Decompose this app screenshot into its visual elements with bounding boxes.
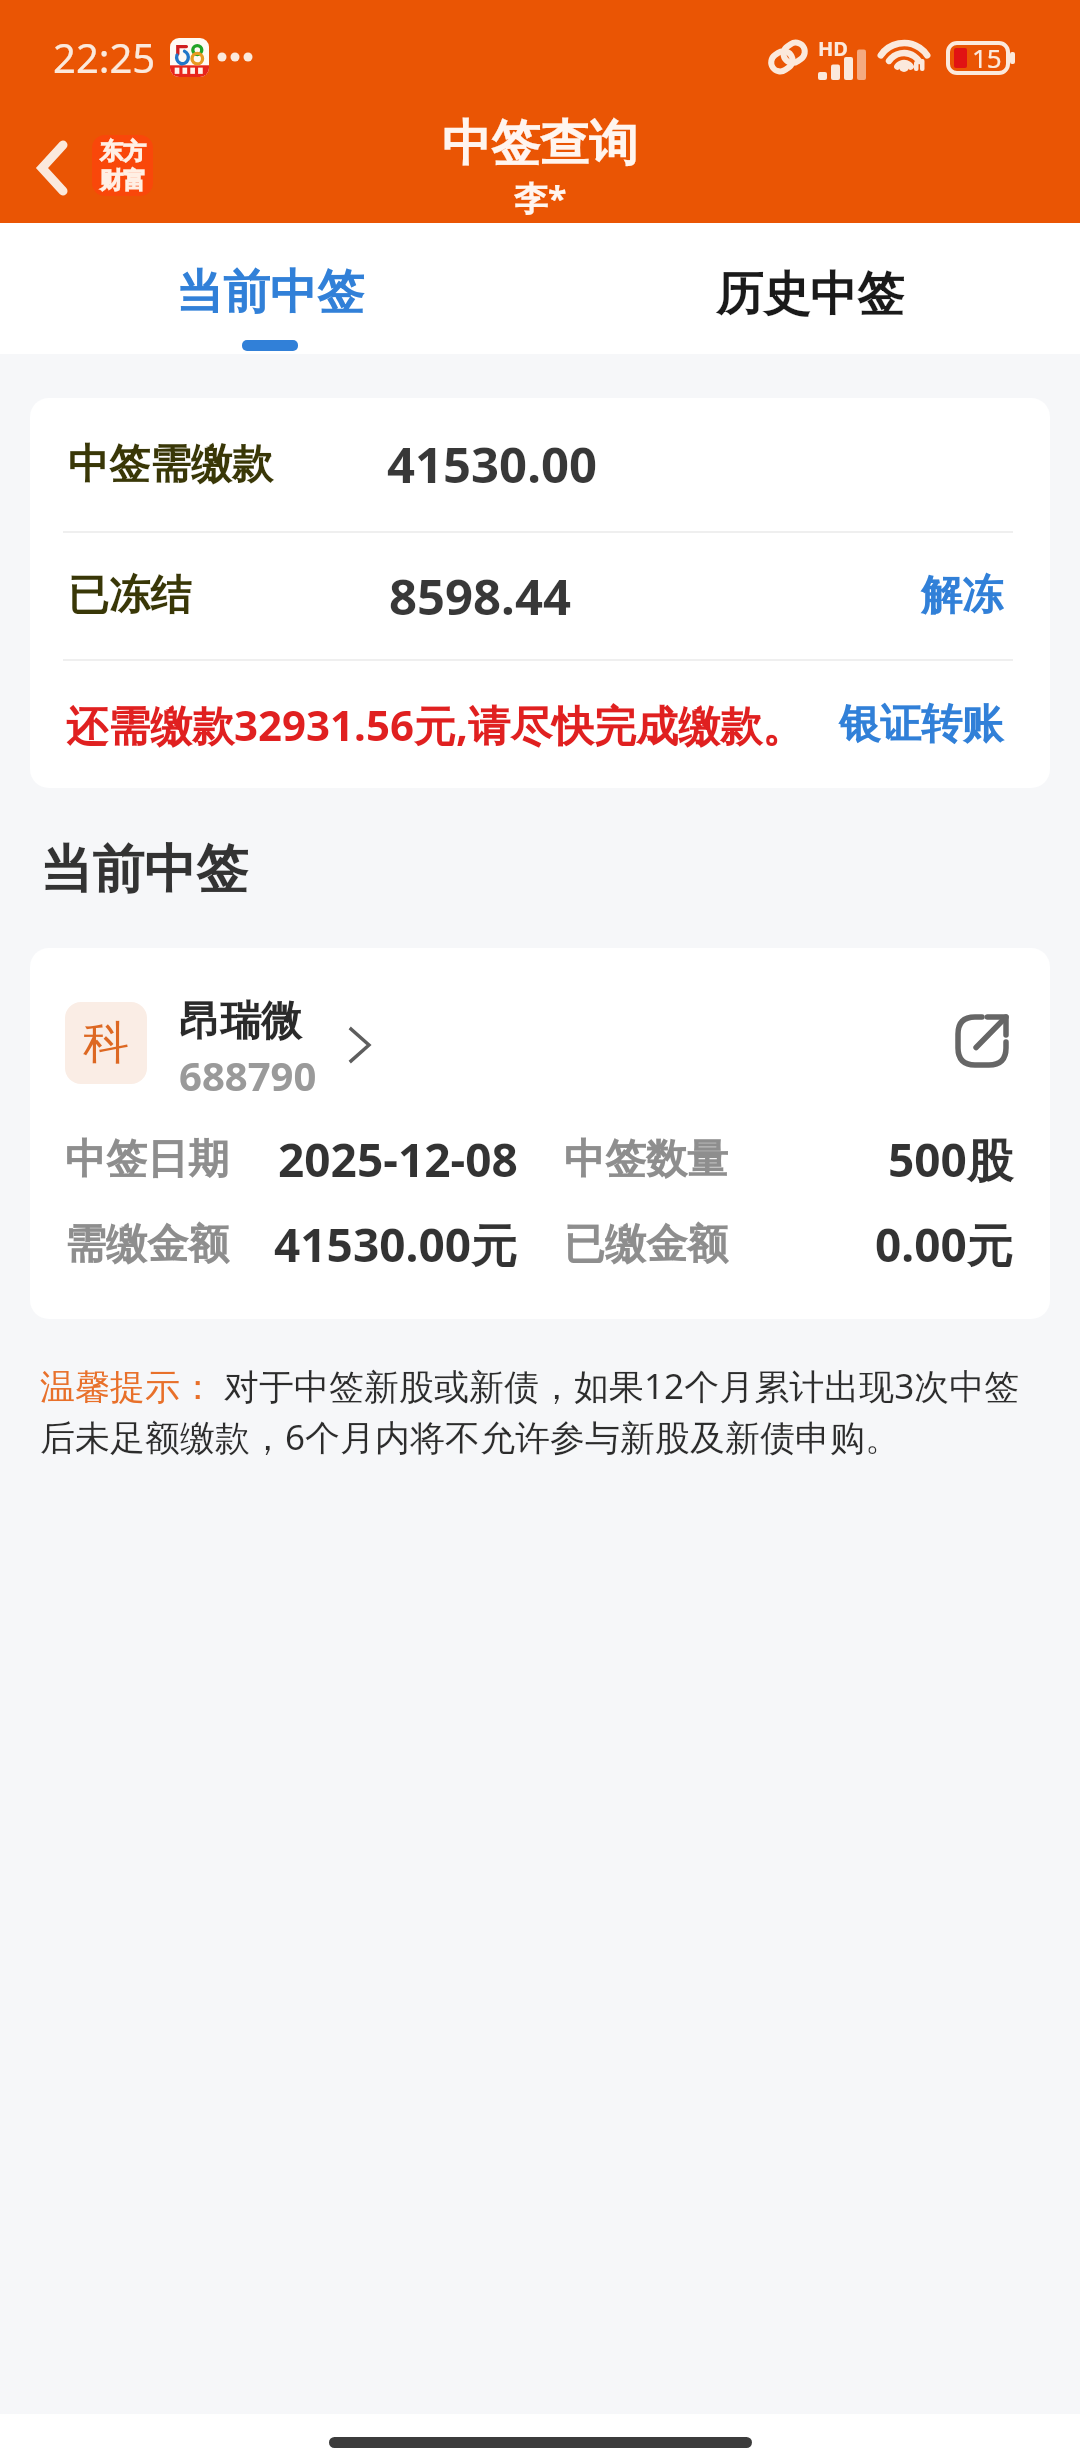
button[interactable]: 银证转账	[839, 679, 1003, 771]
staticText: 财富	[100, 166, 146, 195]
staticText: 22:25	[53, 30, 156, 84]
staticText: 中签查询	[442, 113, 638, 175]
staticText: 15	[972, 40, 1002, 75]
staticText: 历史中签	[716, 265, 904, 324]
staticText: 已冻结	[68, 570, 191, 622]
staticText: 500股	[888, 1128, 1013, 1191]
staticText: 2025-12-08	[278, 1128, 518, 1191]
staticText: 已缴金额	[564, 1219, 728, 1271]
button[interactable]: 解冻	[921, 550, 1003, 642]
staticText: 中签数量	[564, 1134, 728, 1186]
staticText: 解冻	[921, 570, 1003, 622]
staticText: 昂瑞微	[179, 996, 302, 1048]
button[interactable]: Back	[14, 130, 90, 206]
staticText: 中签需缴款	[68, 439, 273, 491]
staticText: 8598.44	[389, 563, 571, 630]
staticText: 41530.00元	[274, 1213, 518, 1276]
staticText: 当前中签	[176, 263, 364, 322]
button[interactable]: 科	[65, 979, 951, 1102]
staticText: 东方	[100, 137, 146, 166]
staticText: 中签日期	[65, 1134, 229, 1186]
button[interactable]: Open stock detail	[951, 1010, 1013, 1072]
button[interactable]: East Money	[92, 135, 153, 196]
button[interactable]: 当前中签	[0, 223, 540, 354]
staticText: 温馨提示： 对于中签新股或新债，如果12个月累计出现3次中签后未足额缴款，6个月…	[40, 1362, 1042, 1460]
staticText: HD	[818, 35, 848, 62]
staticText: 688790	[179, 1048, 317, 1102]
staticText: 银证转账	[839, 699, 1003, 751]
staticText: 还需缴款32931.56元,请尽快完成缴款。	[66, 696, 804, 753]
staticText: 当前中签	[40, 837, 248, 903]
staticText: 0.00元	[875, 1213, 1013, 1276]
staticText: 41530.00	[387, 431, 597, 498]
button[interactable]: 历史中签	[540, 223, 1080, 354]
staticText: 李*	[514, 175, 567, 217]
staticText: 科	[83, 1014, 129, 1072]
staticText: 需缴金额	[65, 1219, 229, 1271]
